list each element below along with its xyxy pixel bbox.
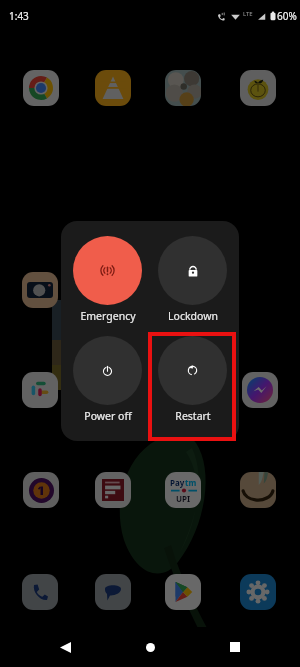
button[interactable]: Paytm bbox=[165, 472, 201, 508]
button[interactable]: Chrome bbox=[23, 70, 59, 106]
button[interactable]: Recents bbox=[215, 627, 255, 667]
button[interactable]: VLC bbox=[95, 70, 131, 106]
button[interactable]: Apple Music bbox=[240, 70, 276, 106]
button[interactable]: Gallery bbox=[165, 70, 201, 106]
staticText: 1:43 bbox=[9, 9, 29, 23]
button[interactable]: Bank bbox=[23, 472, 59, 508]
staticText: Restart bbox=[175, 409, 211, 423]
button[interactable]: Amazon bbox=[240, 472, 276, 508]
staticText: Lockdown bbox=[168, 309, 218, 323]
button[interactable]: Emergency bbox=[73, 236, 142, 323]
button[interactable]: First bbox=[95, 472, 131, 508]
button[interactable]: Messages bbox=[95, 574, 131, 610]
staticText: UPI bbox=[176, 493, 191, 504]
button[interactable]: Play Store bbox=[165, 574, 201, 610]
button[interactable]: Lockdown bbox=[158, 236, 227, 323]
button[interactable]: Back bbox=[45, 627, 85, 667]
staticText: LTE bbox=[243, 10, 253, 18]
button[interactable]: Power off bbox=[73, 336, 142, 423]
button[interactable]: Camera bbox=[22, 272, 58, 308]
button[interactable]: Messenger bbox=[242, 372, 278, 408]
staticText: tm bbox=[185, 477, 197, 488]
button[interactable]: Settings bbox=[240, 574, 276, 610]
button[interactable]: Phone bbox=[22, 574, 58, 610]
staticText: 60% bbox=[277, 9, 297, 23]
button[interactable]: Restart bbox=[158, 336, 227, 423]
staticText: Pay bbox=[170, 477, 185, 488]
staticText: Power off bbox=[84, 409, 132, 423]
button[interactable]: Home bbox=[130, 627, 170, 667]
button[interactable]: Slack bbox=[22, 372, 58, 408]
staticText: Emergency bbox=[80, 309, 136, 323]
